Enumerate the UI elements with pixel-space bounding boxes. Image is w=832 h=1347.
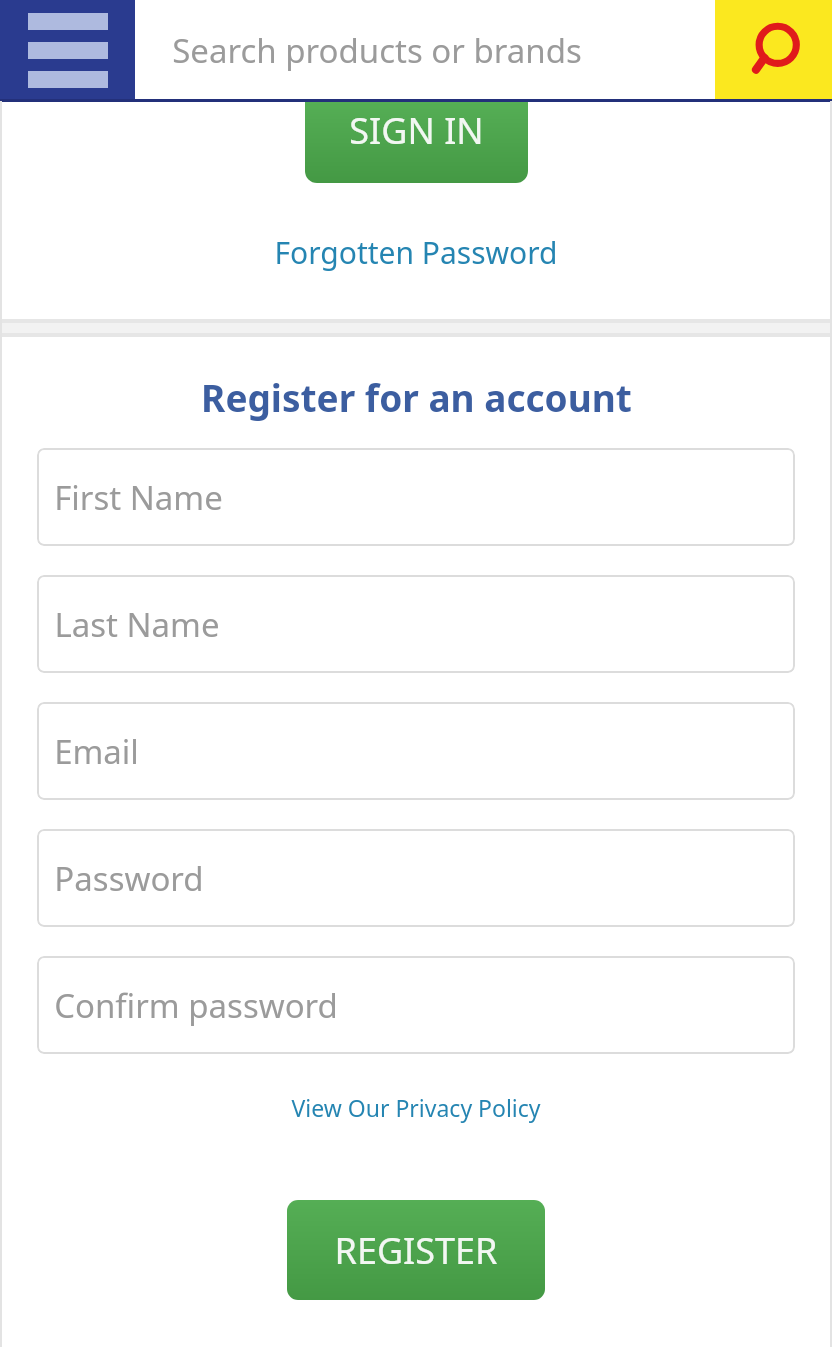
button[interactable]: SIGN IN (305, 102, 528, 183)
button[interactable]: REGISTER (287, 1200, 545, 1300)
staticText: View Our Privacy Policy (291, 1092, 541, 1123)
staticText: Password (54, 856, 204, 901)
button[interactable]: Email (37, 702, 795, 800)
button[interactable]: Confirm password (37, 956, 795, 1054)
staticText: Register for an account (201, 372, 632, 422)
staticText: Forgotten Password (274, 232, 558, 273)
staticText: SIGN IN (349, 106, 484, 155)
button[interactable]: Menu (0, 0, 135, 101)
button[interactable]: Search products or brands (135, 0, 715, 101)
button[interactable]: View Our Privacy Policy (0, 1086, 832, 1128)
button[interactable]: Password (37, 829, 795, 927)
button[interactable]: Forgotten Password (0, 228, 832, 276)
button[interactable]: First Name (37, 448, 795, 546)
staticText: Confirm password (54, 983, 338, 1028)
staticText: First Name (54, 475, 223, 520)
staticText: Last Name (54, 602, 220, 647)
button[interactable]: Last Name (37, 575, 795, 673)
staticText: Search products or brands (172, 28, 582, 73)
staticText: REGISTER (334, 1226, 498, 1275)
button[interactable]: Search (715, 0, 832, 101)
staticText: Email (54, 729, 139, 774)
